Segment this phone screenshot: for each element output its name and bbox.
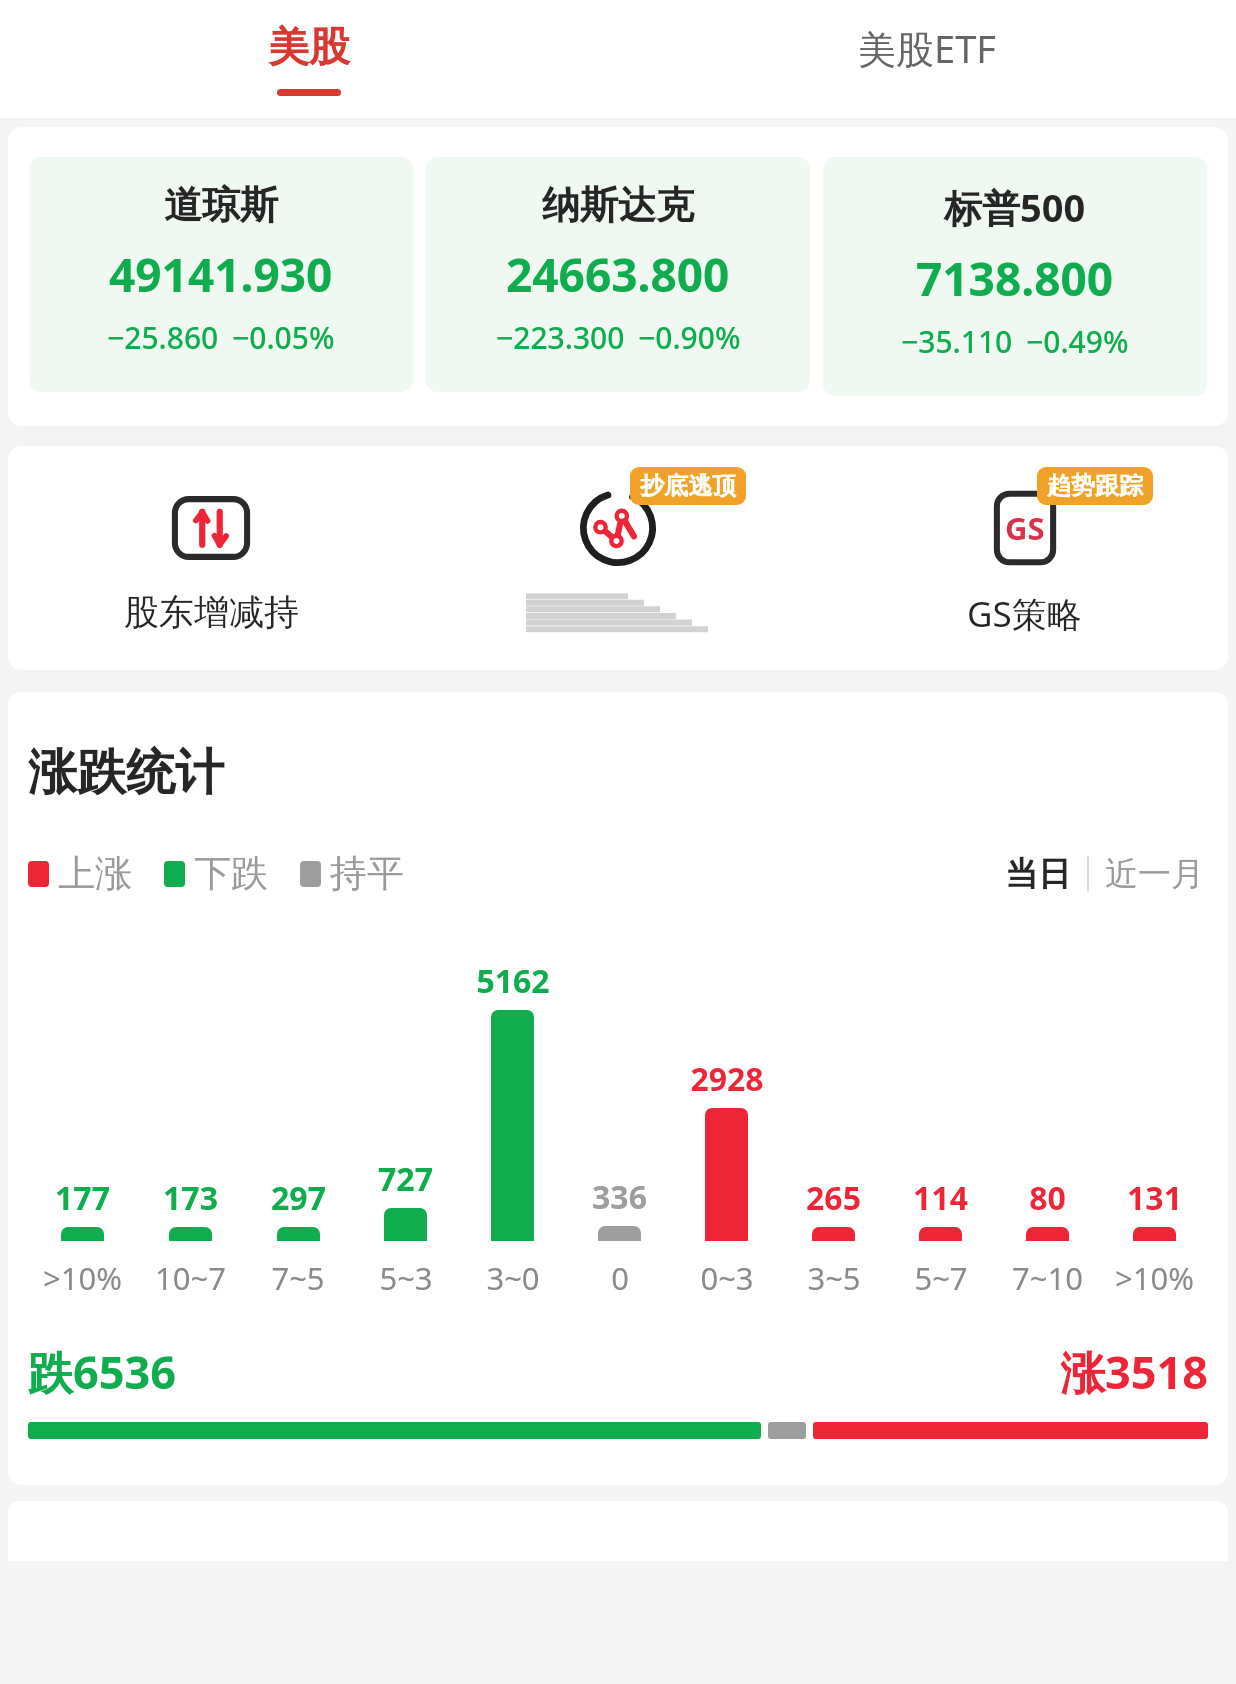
button[interactable]: 336 (566, 959, 673, 1241)
button[interactable]: 727 (352, 959, 459, 1241)
button[interactable]: 道琼斯 (29, 157, 413, 392)
button[interactable]: 173 (136, 959, 244, 1241)
staticText: 下跌 (194, 850, 268, 897)
staticText: 3~0 (486, 1257, 540, 1299)
staticText: >10% (43, 1257, 122, 1299)
button[interactable]: 股东增减持 (8, 482, 414, 634)
button[interactable]: 近一月 (1101, 853, 1208, 895)
staticText: 49141.930 (109, 243, 333, 306)
staticText: GS (1005, 507, 1045, 549)
staticText: −223.300 (496, 317, 625, 358)
staticText: 涨3518 (1060, 1341, 1208, 1402)
button[interactable]: 纳斯达克 (426, 157, 810, 392)
staticText: 24663.800 (506, 243, 730, 306)
staticText: 道琼斯 (164, 181, 278, 229)
staticText: 5162 (476, 959, 550, 1003)
staticText: 7~10 (1012, 1257, 1083, 1299)
button[interactable]: 标普500 (823, 157, 1207, 396)
staticText: −0.49% (1026, 321, 1129, 362)
button[interactable]: 80 (994, 959, 1101, 1241)
staticText: −25.860 (107, 317, 219, 358)
button[interactable]: 持平 (300, 850, 404, 897)
button[interactable]: 美股ETF (618, 0, 1236, 118)
button[interactable]: 2928 (673, 959, 780, 1241)
staticText: 3~5 (807, 1257, 861, 1299)
staticText: 297 (271, 1176, 326, 1220)
staticText: 265 (806, 1176, 861, 1220)
staticText: >10% (1115, 1257, 1194, 1299)
staticText: 持平 (330, 850, 404, 897)
button[interactable]: 114 (887, 959, 994, 1241)
staticText: 7~5 (271, 1257, 325, 1299)
staticText: 727 (378, 1157, 433, 1201)
button[interactable]: 131 (1101, 959, 1208, 1241)
staticText: 标普500 (944, 181, 1086, 233)
staticText: 336 (592, 1175, 647, 1219)
staticText: −0.90% (638, 317, 741, 358)
staticText: 5~3 (379, 1257, 433, 1299)
button[interactable]: 当日 (1001, 853, 1075, 895)
button[interactable]: 265 (780, 959, 887, 1241)
staticText: −35.110 (901, 321, 1013, 362)
staticText: 0 (611, 1257, 629, 1299)
staticText: 抄底逃顶 (640, 471, 736, 501)
button[interactable]: 上涨 (28, 850, 132, 897)
staticText: 80 (1029, 1176, 1066, 1220)
staticText: 当日 (1005, 853, 1071, 895)
button[interactable]: 177 (28, 959, 136, 1241)
staticText: GS策略 (967, 590, 1082, 638)
staticText: 173 (163, 1176, 218, 1220)
staticText: 10~7 (155, 1257, 226, 1299)
staticText: 177 (55, 1176, 110, 1220)
staticText: 近一月 (1105, 853, 1204, 895)
staticText: 上涨 (58, 850, 132, 897)
button[interactable]: 5162 (459, 959, 566, 1241)
staticText: 涨跌统计 (28, 742, 224, 804)
button[interactable]: 抄底逃顶 (414, 482, 821, 634)
staticText: 美股ETF (858, 22, 996, 74)
button[interactable]: 297 (244, 959, 352, 1241)
staticText: 股东增减持 (124, 590, 299, 634)
staticText: 纳斯达克 (542, 181, 694, 229)
staticText: 2928 (690, 1057, 764, 1101)
staticText: 114 (913, 1176, 968, 1220)
staticText: 0~3 (700, 1257, 754, 1299)
staticText: 趋势跟踪 (1047, 471, 1143, 501)
button[interactable]: 美股 (0, 0, 618, 118)
staticText: 跌6536 (28, 1341, 176, 1402)
button[interactable]: GS策略 (821, 482, 1228, 638)
staticText: 131 (1127, 1176, 1182, 1220)
button[interactable]: 下跌 (164, 850, 268, 897)
staticText: 美股 (268, 22, 350, 74)
staticText: 5~7 (914, 1257, 968, 1299)
staticText: 7138.800 (916, 247, 1114, 310)
staticText: −0.05% (232, 317, 335, 358)
